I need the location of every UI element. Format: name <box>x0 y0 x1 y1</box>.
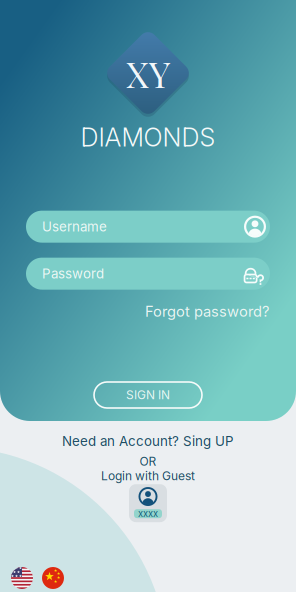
staticText: OR <box>139 454 156 469</box>
button[interactable]: SIGN IN <box>94 382 202 408</box>
staticText: XY <box>126 49 170 97</box>
staticText: Need an Account? Sing UP <box>62 433 234 449</box>
staticText: Forgot password? <box>145 303 269 320</box>
staticText: SIGN IN <box>126 388 170 402</box>
button[interactable]: Chinese <box>42 567 64 589</box>
button[interactable]: English <box>11 567 33 589</box>
staticText: Password <box>42 266 104 282</box>
staticText: DIAMONDS <box>80 122 215 153</box>
staticText: Login with Guest <box>101 469 195 483</box>
button[interactable]: Need an Account? Sing UP <box>62 433 234 449</box>
staticText: Username <box>42 219 107 235</box>
button[interactable]: Forgot password? <box>0 290 296 320</box>
staticText: xxxx <box>138 508 158 519</box>
button[interactable]: Login with Guest <box>129 483 167 522</box>
